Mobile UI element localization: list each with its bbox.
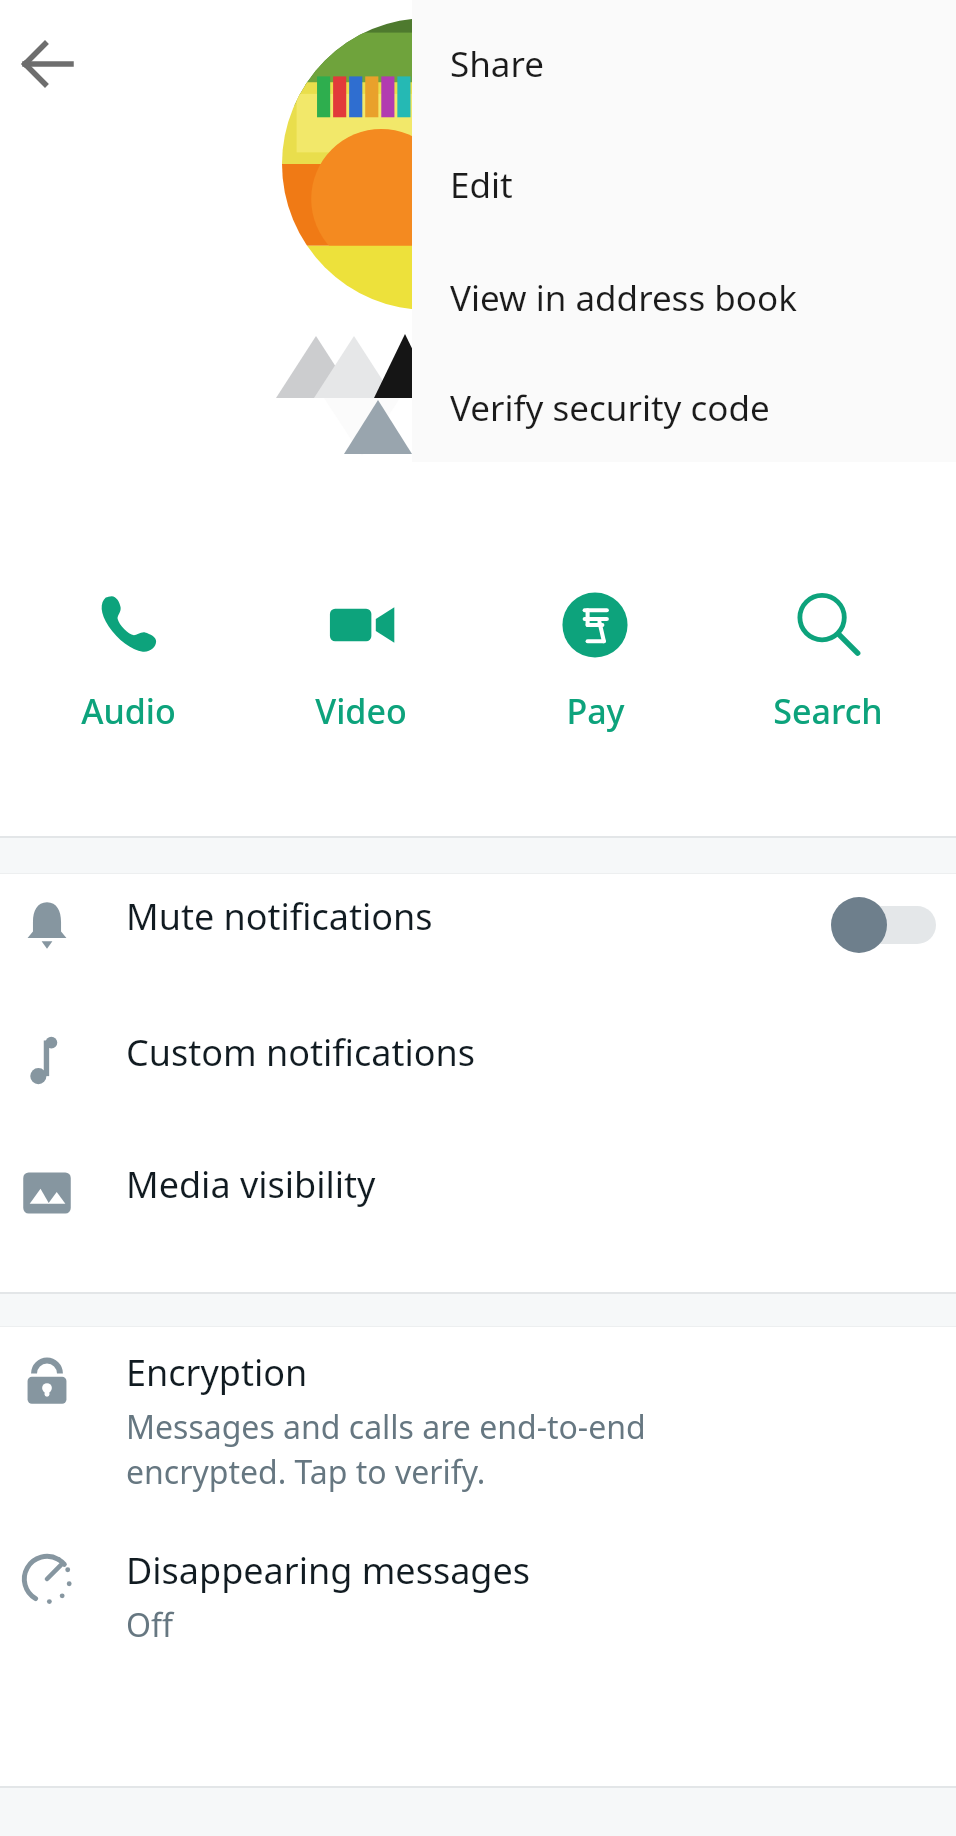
button[interactable]: Mute notifications (0, 880, 956, 966)
button[interactable]: Back (0, 18, 96, 110)
button[interactable]: Audio (23, 580, 233, 734)
staticText: Disappearing messages (126, 1546, 531, 1595)
staticText: Video (315, 688, 407, 734)
button[interactable]: Share (412, 0, 956, 128)
staticText: View in address book (450, 274, 797, 322)
button[interactable]: Pay (490, 580, 700, 734)
button[interactable]: Edit (412, 128, 956, 241)
button[interactable]: Verify security code (412, 354, 956, 462)
button[interactable]: Custom notifications (0, 1016, 956, 1100)
staticText: Custom notifications (126, 1028, 476, 1077)
staticText: Edit (450, 161, 513, 209)
staticText: Verify security code (450, 384, 770, 432)
staticText: Pay (566, 688, 625, 734)
staticText: Mute notifications (126, 892, 433, 941)
button[interactable]: Disappearing messages (0, 1534, 956, 1659)
staticText: Share (450, 40, 544, 88)
staticText: Encryption (126, 1348, 308, 1397)
staticText: Off (126, 1603, 174, 1647)
button[interactable]: View in address book (412, 241, 956, 354)
staticText: Messages and calls are end-to-end encryp… (126, 1405, 646, 1493)
button[interactable]: Encryption (0, 1336, 956, 1505)
staticText: Search (773, 688, 883, 734)
staticText: Audio (81, 688, 176, 734)
button[interactable]: Profile photo (282, 18, 574, 310)
button[interactable]: Video (256, 580, 466, 734)
button[interactable]: Media visibility (0, 1148, 956, 1232)
button[interactable]: Search (723, 580, 933, 734)
staticText: Media visibility (126, 1160, 376, 1209)
